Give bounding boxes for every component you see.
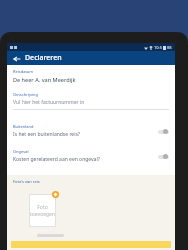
staticText: Foto's van reis bbox=[13, 179, 40, 184]
staticText: Declareren bbox=[25, 53, 62, 63]
staticText: 88 bbox=[167, 45, 172, 50]
staticText: Foto toevoegen bbox=[30, 204, 55, 217]
button[interactable]: Foto toevoegen bbox=[29, 194, 56, 227]
button[interactable]: Foto toevoegen bbox=[52, 191, 59, 198]
staticText: De heer A. van Meerdijk bbox=[13, 76, 76, 83]
staticText: 10:5 bbox=[154, 45, 162, 50]
staticText: Reisdatum bbox=[13, 69, 34, 74]
staticText: Vul hier het factuurnummer in bbox=[13, 99, 85, 106]
staticText: Buitenland bbox=[13, 124, 34, 129]
staticText: Kosten gerelateerd aan een ongeval? bbox=[13, 156, 100, 163]
staticText: Omschrijving bbox=[13, 92, 38, 97]
staticText: Ongeval bbox=[13, 149, 29, 154]
button[interactable]: Buitenland bbox=[7, 124, 175, 138]
staticText: Is het een buitenlandse reis? bbox=[13, 131, 81, 138]
button[interactable]: Terug bbox=[11, 53, 22, 64]
button[interactable]: Ongeval bbox=[7, 149, 175, 163]
